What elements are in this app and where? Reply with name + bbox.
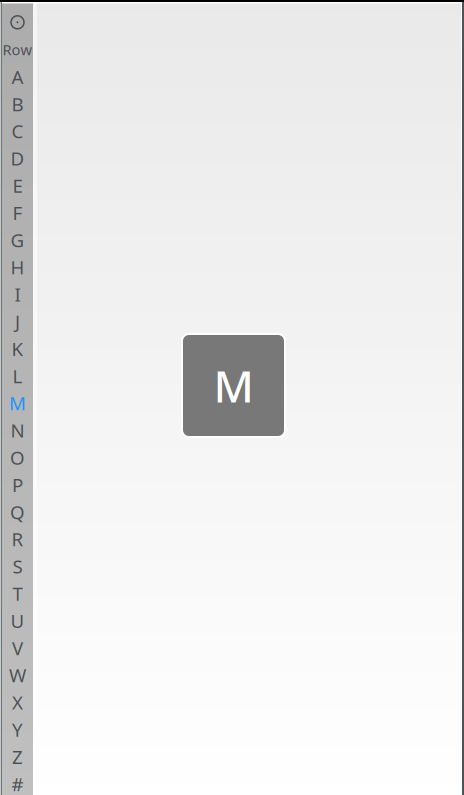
button[interactable]: I [2, 281, 33, 308]
button[interactable]: N [2, 417, 33, 444]
button[interactable]: G [2, 226, 33, 253]
button[interactable]: Search [2, 9, 33, 36]
staticText: H [10, 255, 24, 279]
button[interactable]: O [2, 444, 33, 471]
staticText: C [11, 119, 23, 143]
button[interactable]: J [2, 308, 33, 335]
button[interactable]: F [2, 199, 33, 226]
staticText: X [12, 690, 23, 715]
button[interactable]: Row [2, 36, 33, 63]
staticText: E [12, 173, 22, 198]
staticText: I [14, 282, 20, 307]
staticText: D [10, 146, 24, 171]
button[interactable]: U [2, 607, 33, 634]
staticText: P [12, 472, 23, 497]
staticText: W [9, 663, 26, 687]
button[interactable]: P [2, 471, 33, 498]
button[interactable]: A [2, 63, 33, 90]
staticText: G [10, 227, 24, 252]
button[interactable]: Y [2, 716, 33, 743]
staticText: K [11, 336, 23, 361]
button[interactable]: H [2, 253, 33, 281]
button[interactable]: # [2, 770, 33, 795]
button[interactable]: Q [2, 498, 33, 525]
button[interactable]: W [2, 661, 33, 689]
button[interactable]: X [2, 689, 33, 716]
button[interactable]: R [2, 525, 33, 553]
staticText: V [12, 635, 23, 660]
staticText: S [12, 554, 22, 579]
staticText: Z [12, 744, 23, 769]
button[interactable]: S [2, 553, 33, 580]
button[interactable]: V [2, 634, 33, 661]
staticText: T [12, 581, 22, 606]
button[interactable]: K [2, 335, 33, 362]
staticText: M [213, 356, 253, 415]
staticText: Q [10, 499, 25, 524]
staticText: Row [2, 40, 32, 59]
staticText: B [11, 91, 23, 116]
staticText: N [10, 418, 24, 443]
staticText: J [15, 309, 20, 334]
staticText: U [10, 608, 24, 633]
button[interactable]: D [2, 145, 33, 172]
button[interactable]: M [2, 389, 33, 417]
staticText: R [11, 527, 23, 551]
button[interactable]: T [2, 580, 33, 607]
staticText: M [9, 391, 26, 415]
staticText: L [12, 363, 22, 388]
staticText: O [10, 445, 25, 470]
staticText: # [11, 771, 23, 795]
button[interactable]: B [2, 90, 33, 117]
button[interactable]: Z [2, 743, 33, 770]
button[interactable]: C [2, 117, 33, 145]
staticText: Y [12, 717, 23, 742]
staticText: A [11, 64, 23, 89]
button[interactable]: E [2, 172, 33, 199]
staticText: F [12, 200, 22, 225]
button[interactable]: L [2, 362, 33, 389]
